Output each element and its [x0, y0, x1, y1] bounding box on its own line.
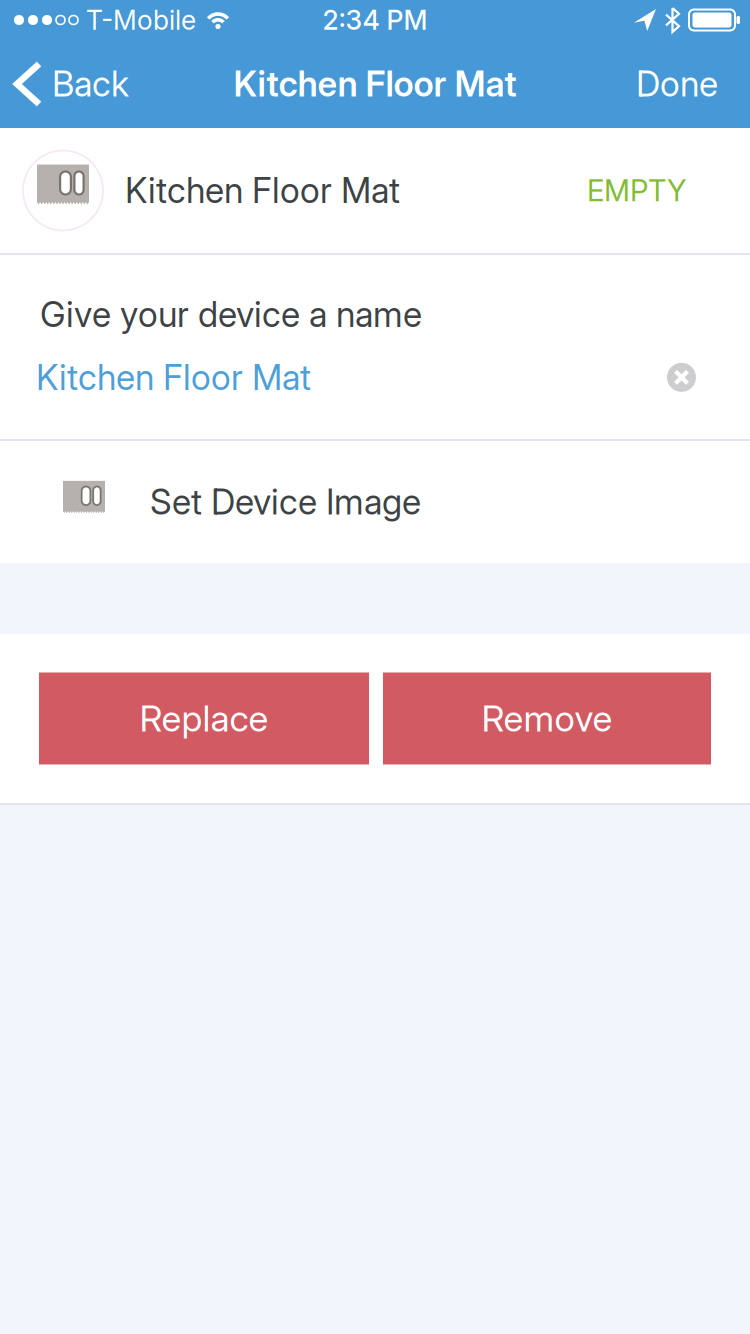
button[interactable]: Remove [383, 672, 711, 764]
staticText: Remove [481, 697, 612, 740]
staticText: Back [52, 64, 129, 104]
staticText: Done [636, 64, 718, 104]
staticText: Give your device a name [40, 294, 422, 335]
staticText: Set Device Image [150, 482, 421, 522]
staticText: Replace [139, 697, 268, 740]
button[interactable]: Back [0, 64, 129, 104]
staticText: 2:34 PM [322, 4, 427, 36]
staticText: Kitchen Floor Mat [36, 357, 311, 398]
button[interactable]: Set Device Image [0, 441, 750, 563]
button[interactable]: Clear text [667, 363, 750, 392]
staticText: Kitchen Floor Mat [233, 64, 516, 104]
button[interactable]: Replace [39, 672, 369, 764]
staticText: EMPTY [587, 173, 686, 208]
staticText: T-Mobile [86, 4, 196, 36]
staticText: Kitchen Floor Mat [125, 170, 400, 211]
button[interactable]: Done [636, 64, 750, 104]
